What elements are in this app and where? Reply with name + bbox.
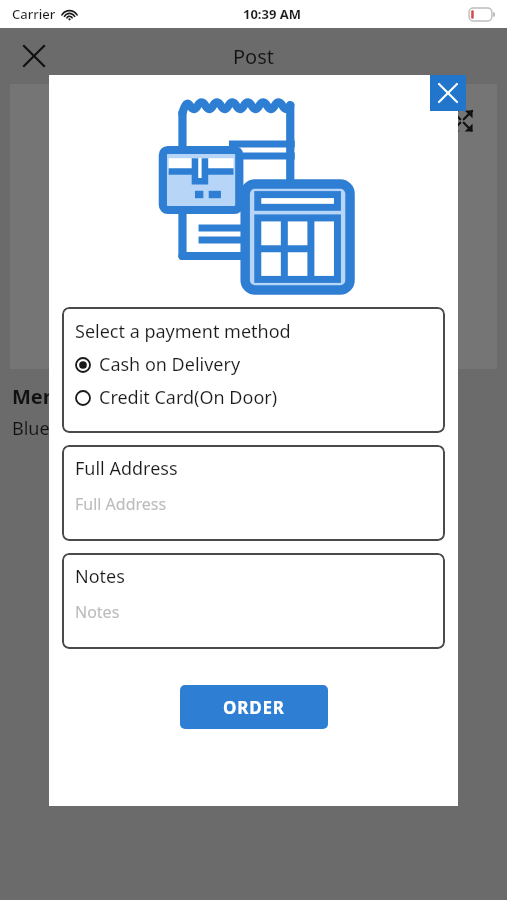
button[interactable]: Close bbox=[14, 36, 54, 76]
staticText: Notes bbox=[75, 601, 120, 623]
staticText: Cash on Delivery bbox=[99, 352, 241, 377]
button[interactable]: Credit Card(On Door) bbox=[75, 385, 445, 410]
staticText: ORDER bbox=[223, 696, 285, 719]
button[interactable]: Select a payment method bbox=[62, 307, 445, 433]
staticText: Credit Card(On Door) bbox=[99, 385, 278, 410]
staticText: Select a payment method bbox=[75, 319, 291, 344]
button[interactable]: Cash on Delivery bbox=[75, 352, 445, 377]
button[interactable]: Expand bbox=[447, 106, 477, 136]
button[interactable]: Notes bbox=[62, 553, 445, 649]
staticText: Carrier bbox=[12, 5, 56, 23]
staticText: Notes bbox=[75, 564, 125, 589]
staticText: Post bbox=[233, 43, 274, 70]
staticText: Full Address bbox=[75, 456, 178, 481]
staticText: Blue bbox=[12, 416, 50, 441]
staticText: 10:39 AM bbox=[243, 5, 302, 23]
staticText: Men bbox=[12, 383, 56, 410]
button[interactable]: Full Address bbox=[62, 445, 445, 541]
button[interactable]: ORDER bbox=[180, 685, 328, 729]
staticText: Full Address bbox=[75, 493, 167, 515]
button[interactable]: Close dialog bbox=[430, 75, 466, 111]
